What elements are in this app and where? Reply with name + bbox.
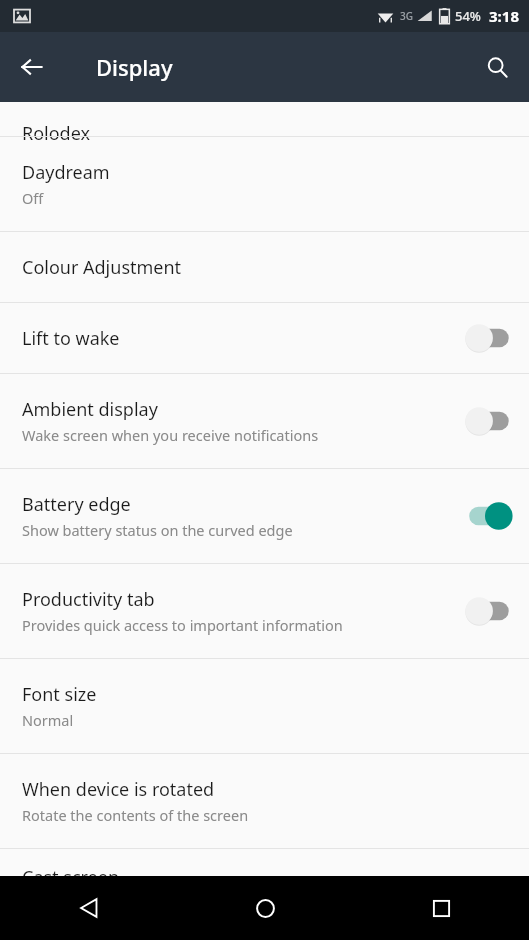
- staticText: Font size: [22, 682, 97, 707]
- staticText: Rolodex: [22, 121, 91, 146]
- button[interactable]: Navigate up: [8, 43, 56, 91]
- button[interactable]: Colour Adjustment: [0, 232, 529, 302]
- button[interactable]: Productivity tab: [0, 564, 529, 658]
- button[interactable]: Lift to wake off: [451, 303, 529, 373]
- button[interactable]: Font size: [0, 659, 529, 753]
- button[interactable]: Battery edge on: [451, 469, 529, 563]
- staticText: Provides quick access to important infor…: [22, 615, 343, 635]
- button[interactable]: Recent apps: [353, 876, 529, 940]
- button[interactable]: Cast screen: [0, 849, 529, 876]
- staticText: Cast screen: [22, 865, 120, 890]
- button[interactable]: Ambient display off: [451, 374, 529, 468]
- staticText: Display: [96, 52, 173, 82]
- staticText: Daydream: [22, 160, 110, 185]
- staticText: Ambient display: [22, 397, 158, 422]
- staticText: 3G: [400, 9, 413, 23]
- button[interactable]: Ambient display: [0, 374, 529, 468]
- staticText: Productivity tab: [22, 587, 155, 612]
- staticText: Battery edge: [22, 492, 131, 517]
- button[interactable]: Daydream: [0, 137, 529, 231]
- staticText: 54%: [455, 7, 481, 25]
- button[interactable]: Productivity tab off: [451, 564, 529, 658]
- staticText: Lift to wake: [22, 326, 120, 351]
- staticText: 3:18: [489, 6, 519, 26]
- button[interactable]: Battery edge: [0, 469, 529, 563]
- button[interactable]: Rolodex: [0, 102, 529, 136]
- staticText: When device is rotated: [22, 777, 215, 802]
- button[interactable]: When device is rotated: [0, 754, 529, 848]
- staticText: Show battery status on the curved edge: [22, 520, 293, 540]
- staticText: Colour Adjustment: [22, 255, 182, 280]
- staticText: Off: [22, 188, 44, 208]
- staticText: Rotate the contents of the screen: [22, 805, 249, 825]
- button[interactable]: Search: [473, 43, 521, 91]
- button[interactable]: Lift to wake: [0, 303, 529, 373]
- button[interactable]: Home: [177, 876, 353, 940]
- button[interactable]: Back: [0, 876, 177, 940]
- staticText: Normal: [22, 710, 74, 730]
- staticText: Wake screen when you receive notificatio…: [22, 425, 319, 445]
